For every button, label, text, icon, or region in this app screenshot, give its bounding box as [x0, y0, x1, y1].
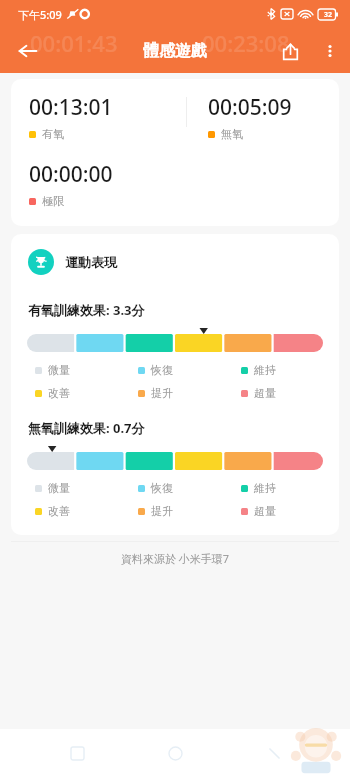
staticText: 00:13:01 [29, 93, 113, 122]
staticText: 微量 [48, 363, 70, 377]
staticText: 資料來源於 小米手環7 [0, 551, 350, 566]
staticText: 超量 [254, 386, 276, 400]
staticText: 提升 [151, 386, 173, 400]
staticText: 改善 [48, 386, 70, 400]
staticText: 超量 [254, 504, 276, 518]
staticText: 00:05:09 [208, 93, 292, 122]
button[interactable]: Share [270, 31, 310, 71]
staticText: 提升 [151, 504, 173, 518]
staticText: 運動表現 [65, 254, 117, 270]
staticText: 00:23:08 [202, 28, 290, 58]
staticText: 無氧 [221, 127, 243, 141]
button[interactable]: Recents [55, 731, 99, 775]
staticText: 無氧訓練效果: 0.7分 [28, 419, 145, 437]
staticText: 改善 [48, 504, 70, 518]
button[interactable]: 00:13:01 [11, 79, 339, 226]
staticText: 極限 [42, 194, 64, 208]
button[interactable]: Home [153, 731, 197, 775]
staticText: 00:01:43 [30, 28, 118, 58]
button[interactable]: Back [252, 731, 296, 775]
staticText: 微量 [48, 481, 70, 495]
staticText: 有氧訓練效果: 3.3分 [28, 301, 145, 319]
staticText: 00:00:00 [29, 160, 113, 189]
staticText: 有氧 [42, 127, 64, 141]
button[interactable]: More options [310, 31, 350, 71]
staticText: 下午5:09 [18, 7, 62, 22]
staticText: 恢復 [151, 481, 173, 495]
staticText: 維持 [254, 481, 276, 495]
staticText: 體感遊戲 [143, 41, 207, 61]
staticText: 維持 [254, 363, 276, 377]
staticText: 恢復 [151, 363, 173, 377]
staticText: 32 [324, 10, 333, 20]
button[interactable]: Back [6, 29, 50, 73]
